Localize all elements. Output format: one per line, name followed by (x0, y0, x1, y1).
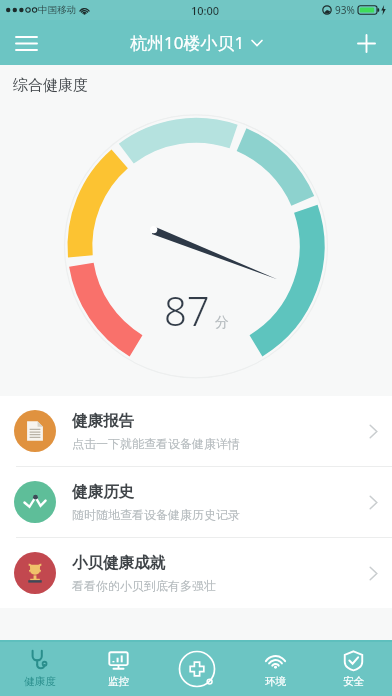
staticText: 环境 (265, 675, 286, 688)
staticText: 小贝健康成就 (72, 553, 165, 573)
staticText: 健康历史 (72, 482, 134, 502)
staticText: 10:00 (191, 3, 220, 18)
button[interactable]: Add device (158, 642, 236, 696)
staticText: 看看你的小贝到底有多强壮 (72, 578, 216, 593)
staticText: 中国移动 (38, 4, 76, 16)
button[interactable]: 杭州10楼小贝1 (130, 31, 263, 54)
staticText: 综合健康度 (13, 76, 88, 95)
staticText: 安全 (343, 675, 364, 688)
staticText: 监控 (108, 675, 129, 688)
staticText: 杭州10楼小贝1 (130, 31, 245, 54)
button[interactable]: 小贝健康成就 (0, 538, 392, 608)
button[interactable]: 安全 (314, 642, 392, 696)
button[interactable]: 环境 (236, 642, 314, 696)
staticText: 93% (335, 3, 355, 17)
staticText: 健康报告 (72, 411, 134, 431)
staticText: 健康度 (24, 675, 56, 688)
staticText: 分 (215, 314, 229, 332)
button[interactable]: Add (348, 25, 384, 61)
button[interactable]: 健康报告 (0, 396, 392, 466)
staticText: 87 (164, 283, 210, 337)
button[interactable]: 健康度 (0, 642, 79, 696)
button[interactable]: 健康历史 (0, 467, 392, 537)
button[interactable]: Menu (8, 25, 44, 61)
button[interactable]: 监控 (79, 642, 158, 696)
staticText: 随时随地查看设备健康历史记录 (72, 507, 240, 522)
staticText: 点击一下就能查看设备健康详情 (72, 436, 240, 451)
